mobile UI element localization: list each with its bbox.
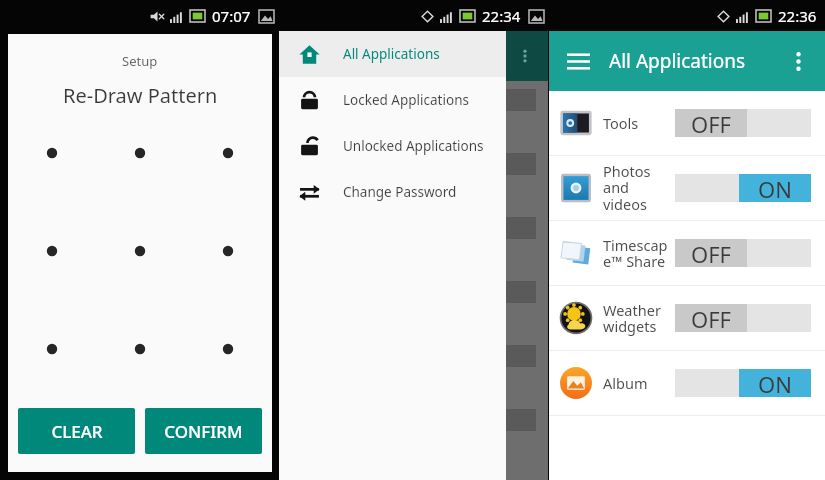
button[interactable]: All Applications	[279, 31, 506, 77]
button[interactable]: ON	[675, 369, 811, 397]
button[interactable]: Weather widgets	[549, 286, 825, 350]
staticText: ON	[758, 174, 792, 202]
staticText: CONFIRM	[164, 420, 243, 443]
button[interactable]: Timescape™ Share	[549, 221, 825, 285]
staticText: Weather widgets	[603, 300, 675, 337]
staticText: Locked Applications	[343, 91, 469, 109]
staticText: Tools	[603, 113, 639, 133]
staticText: Album	[603, 373, 648, 393]
button[interactable]: Album	[549, 351, 825, 415]
button[interactable]: OFF	[675, 109, 811, 137]
button[interactable]: Open navigation drawer	[563, 46, 593, 76]
staticText: OFF	[691, 109, 732, 137]
staticText: CLEAR	[51, 420, 103, 443]
staticText: OFF	[691, 239, 732, 267]
button[interactable]: More options	[785, 48, 811, 74]
staticText: Timescape™ Share	[603, 235, 675, 272]
staticText: All Applications	[343, 45, 440, 63]
staticText: Photos and videos	[603, 161, 675, 215]
button[interactable]: Unlocked Applications	[279, 123, 506, 169]
button[interactable]: Locked Applications	[279, 77, 506, 123]
button[interactable]: More options	[514, 45, 536, 67]
button[interactable]: OFF	[675, 239, 811, 267]
staticText: 22:34	[482, 6, 521, 26]
staticText: Setup	[122, 52, 158, 70]
button[interactable]: CONFIRM	[145, 408, 262, 454]
staticText: ON	[758, 369, 792, 397]
button[interactable]: CLEAR	[18, 408, 135, 454]
staticText: Re-Draw Pattern	[63, 82, 218, 109]
button[interactable]: Change Password	[279, 169, 506, 215]
staticText: OFF	[691, 304, 732, 332]
button[interactable]: Tools	[549, 91, 825, 155]
staticText: All Applications	[609, 48, 746, 74]
staticText: 07:07	[212, 6, 251, 26]
button[interactable]: ON	[675, 174, 811, 202]
staticText: Unlocked Applications	[343, 137, 484, 155]
staticText: Change Password	[343, 183, 457, 201]
button[interactable]: Photos and videos	[549, 156, 825, 220]
button[interactable]: OFF	[675, 304, 811, 332]
staticText: 22:36	[778, 6, 817, 26]
